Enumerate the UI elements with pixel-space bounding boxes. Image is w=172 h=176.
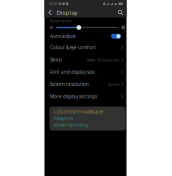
- button[interactable]: Font and display size: [44, 66, 126, 78]
- staticText: Brightness: [50, 18, 72, 23]
- button[interactable]: Screen resolution: [44, 78, 126, 90]
- staticText: Font and display size: [50, 69, 95, 75]
- staticText: Screen resolution: [50, 81, 89, 87]
- button[interactable]: Sleep: [44, 54, 126, 66]
- button[interactable]: More display settings: [44, 90, 126, 102]
- button[interactable]: Colour & eye comfort: [44, 41, 126, 54]
- staticText: Screen recording: [53, 122, 88, 128]
- staticText: More display settings: [50, 93, 97, 99]
- staticText: Sleep: [50, 57, 62, 63]
- staticText: Customise the wallpaper: [53, 109, 103, 115]
- staticText: Always-on: [53, 115, 73, 121]
- staticText: Display: [56, 8, 77, 17]
- staticText: After 15 seconds: [87, 57, 119, 63]
- button[interactable]: Auto-adjust: [44, 31, 126, 41]
- button[interactable]: Search: [116, 7, 125, 17]
- staticText: 10:41: [48, 1, 57, 6]
- button[interactable]: Back: [45, 7, 54, 17]
- staticText: Smart: [108, 81, 119, 87]
- staticText: Colour & eye comfort: [50, 45, 96, 51]
- staticText: Auto-adjust: [50, 33, 76, 39]
